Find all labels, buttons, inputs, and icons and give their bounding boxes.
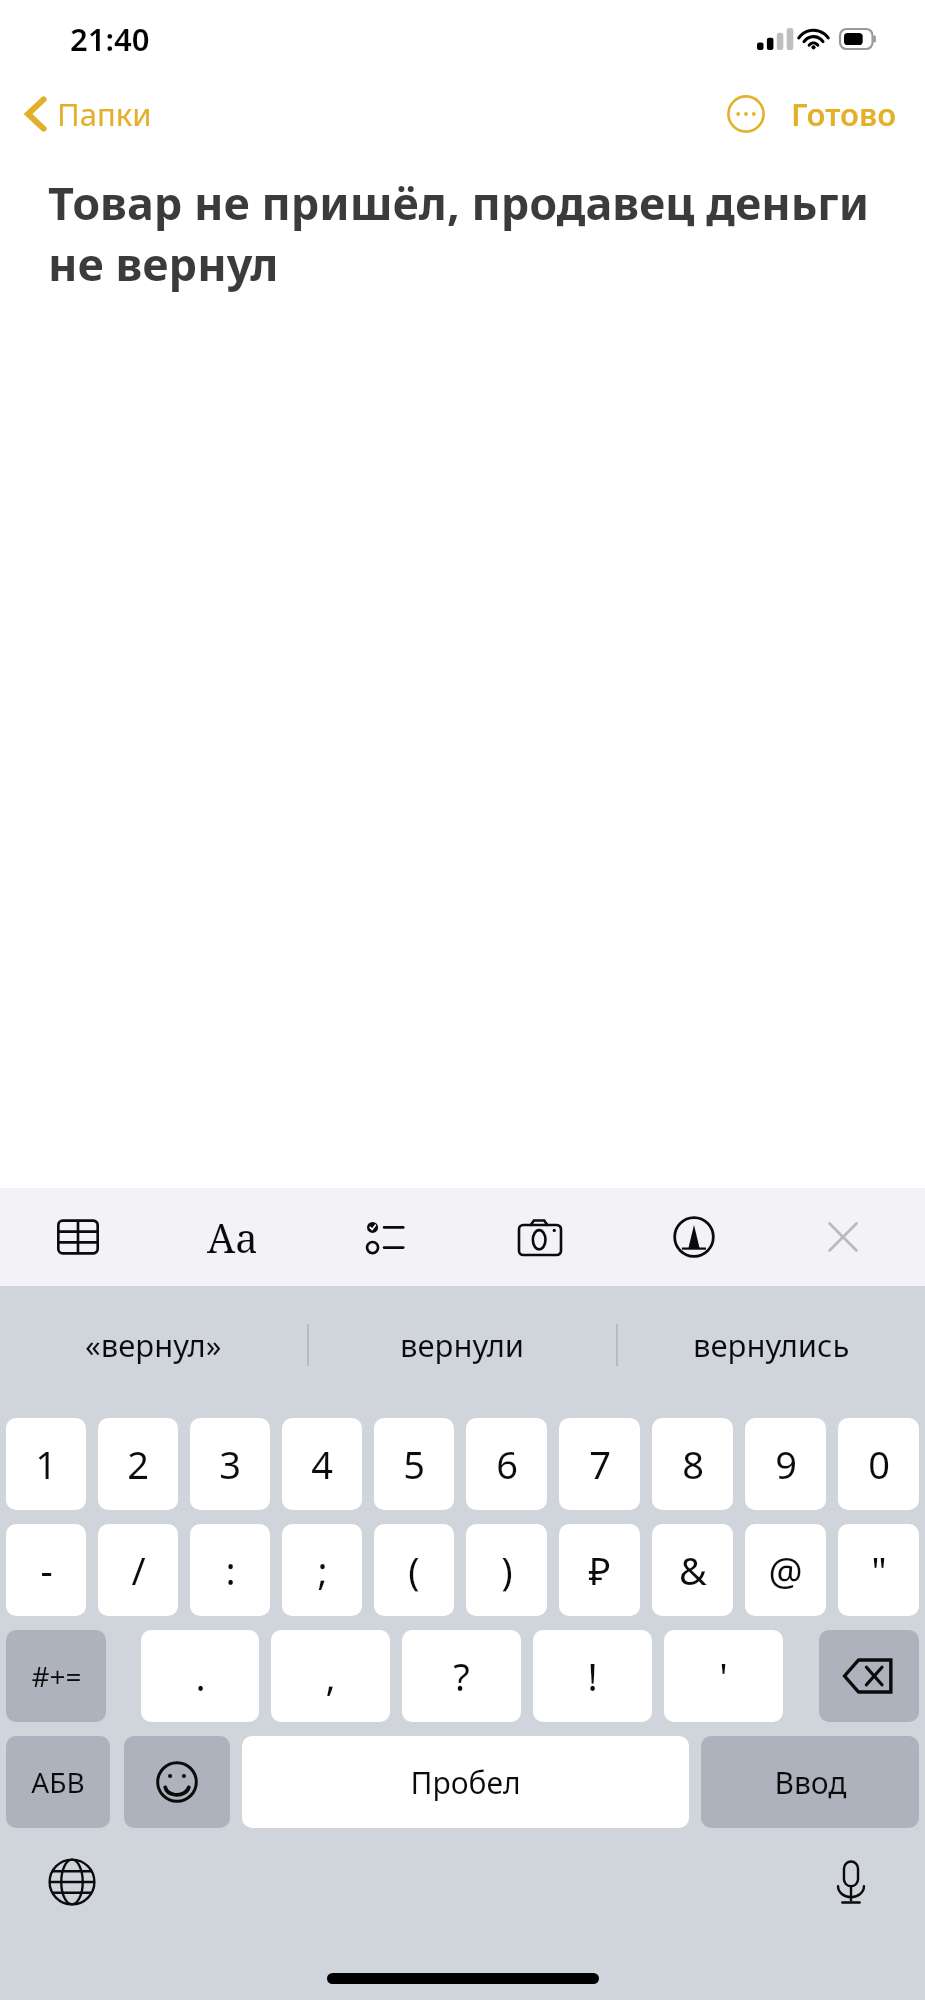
button[interactable]: Ввод bbox=[701, 1736, 919, 1828]
staticText: ' bbox=[719, 1650, 728, 1702]
button[interactable]: АБВ bbox=[6, 1736, 110, 1828]
staticText: @ bbox=[768, 1544, 803, 1596]
staticText: 0 bbox=[868, 1438, 890, 1490]
button[interactable]: 3 bbox=[190, 1418, 270, 1510]
button[interactable]: " bbox=[838, 1524, 919, 1616]
button[interactable]: ₽ bbox=[559, 1524, 640, 1616]
button[interactable]: Dictation bbox=[819, 1850, 883, 1914]
staticText: ) bbox=[501, 1544, 513, 1596]
button[interactable]: @ bbox=[745, 1524, 826, 1616]
staticText: 1 bbox=[35, 1438, 57, 1490]
button[interactable]: Text format bbox=[155, 1188, 309, 1286]
staticText: " bbox=[871, 1544, 887, 1596]
staticText: 3 bbox=[219, 1438, 241, 1490]
button[interactable]: #+= bbox=[6, 1630, 106, 1722]
staticText: Папки bbox=[57, 93, 152, 135]
staticText: 5 bbox=[403, 1438, 425, 1490]
button[interactable]: 6 bbox=[466, 1418, 547, 1510]
button[interactable]: ( bbox=[374, 1524, 454, 1616]
staticText: Готово bbox=[791, 93, 897, 135]
button[interactable]: 7 bbox=[559, 1418, 640, 1510]
staticText: 2 bbox=[127, 1438, 149, 1490]
staticText: & bbox=[679, 1544, 707, 1596]
staticText: : bbox=[225, 1544, 236, 1596]
staticText: ; bbox=[317, 1544, 328, 1596]
button[interactable]: Markup bbox=[617, 1188, 771, 1286]
button[interactable]: ' bbox=[664, 1630, 783, 1722]
staticText: 4 bbox=[311, 1438, 333, 1490]
staticText: «вернул» bbox=[85, 1324, 222, 1366]
staticText: . bbox=[195, 1650, 206, 1702]
staticText: ( bbox=[408, 1544, 420, 1596]
staticText: 8 bbox=[682, 1438, 704, 1490]
button[interactable]: Backspace bbox=[819, 1630, 919, 1722]
button[interactable]: 2 bbox=[98, 1418, 178, 1510]
staticText: 9 bbox=[775, 1438, 797, 1490]
button[interactable]: вернули bbox=[309, 1286, 616, 1404]
staticText: #+= bbox=[31, 1657, 82, 1695]
staticText: 6 bbox=[496, 1438, 518, 1490]
button[interactable]: 0 bbox=[838, 1418, 919, 1510]
staticText: Пробел bbox=[410, 1762, 521, 1803]
button[interactable]: вернулись bbox=[618, 1286, 925, 1404]
button[interactable]: Hide keyboard bbox=[771, 1188, 915, 1286]
button[interactable]: & bbox=[652, 1524, 733, 1616]
button[interactable]: More options bbox=[723, 91, 769, 137]
button[interactable]: - bbox=[6, 1524, 86, 1616]
button[interactable]: Change keyboard language bbox=[40, 1850, 104, 1914]
button[interactable]: Checklist bbox=[309, 1188, 463, 1286]
button[interactable]: Table bbox=[0, 1188, 155, 1286]
button[interactable]: «вернул» bbox=[0, 1286, 307, 1404]
button[interactable]: 5 bbox=[374, 1418, 454, 1510]
button[interactable]: Emoji bbox=[124, 1736, 230, 1828]
button[interactable]: 1 bbox=[6, 1418, 86, 1510]
button[interactable]: 4 bbox=[282, 1418, 362, 1510]
staticText: / bbox=[131, 1544, 146, 1596]
staticText: 7 bbox=[589, 1438, 611, 1490]
staticText: Aa bbox=[207, 1210, 258, 1264]
staticText: , bbox=[325, 1650, 336, 1702]
staticText: ! bbox=[587, 1650, 598, 1702]
button[interactable]: ; bbox=[282, 1524, 362, 1616]
button[interactable]: 9 bbox=[745, 1418, 826, 1510]
button[interactable]: Пробел bbox=[242, 1736, 689, 1828]
button[interactable]: ! bbox=[533, 1630, 652, 1722]
staticText: - bbox=[40, 1544, 53, 1596]
button[interactable]: 8 bbox=[652, 1418, 733, 1510]
staticText: вернулись bbox=[693, 1324, 850, 1366]
staticText: 21:40 bbox=[70, 18, 150, 60]
button[interactable]: ? bbox=[402, 1630, 521, 1722]
button[interactable]: / bbox=[98, 1524, 178, 1616]
button[interactable]: : bbox=[190, 1524, 270, 1616]
button[interactable]: ) bbox=[466, 1524, 547, 1616]
staticText: ₽ bbox=[588, 1544, 611, 1596]
staticText: Ввод bbox=[774, 1762, 847, 1803]
button[interactable]: . bbox=[141, 1630, 259, 1722]
staticText: Товар не пришёл, продавец деньги не верн… bbox=[48, 172, 889, 294]
button[interactable]: Camera bbox=[463, 1188, 617, 1286]
staticText: ? bbox=[453, 1650, 470, 1702]
button[interactable]: , bbox=[271, 1630, 390, 1722]
button[interactable]: Папки bbox=[20, 87, 158, 141]
staticText: вернули bbox=[400, 1324, 525, 1366]
staticText: АБВ bbox=[31, 1763, 85, 1801]
button[interactable]: Готово bbox=[785, 87, 903, 141]
